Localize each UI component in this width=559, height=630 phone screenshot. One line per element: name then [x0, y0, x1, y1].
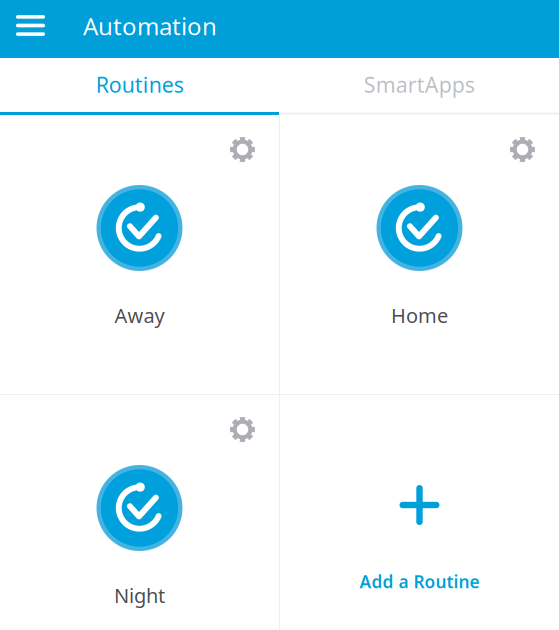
- staticText: Night: [114, 582, 165, 609]
- staticText: SmartApps: [364, 70, 475, 99]
- button[interactable]: Add a Routine: [280, 395, 559, 630]
- button[interactable]: Away: [0, 115, 279, 394]
- staticText: Automation: [83, 10, 217, 42]
- button[interactable]: Settings for Home: [496, 115, 559, 176]
- button[interactable]: Settings for Away: [216, 115, 279, 176]
- staticText: Routines: [96, 70, 184, 99]
- staticText: Home: [391, 302, 448, 329]
- button[interactable]: SmartApps: [279, 56, 559, 113]
- button[interactable]: Home: [280, 115, 559, 394]
- staticText: Add a Routine: [359, 570, 479, 593]
- button[interactable]: Night: [0, 395, 279, 630]
- staticText: Away: [114, 302, 164, 329]
- button[interactable]: Routines: [0, 56, 279, 113]
- button[interactable]: Settings for Night: [216, 395, 279, 456]
- button[interactable]: Menu: [0, 0, 57, 58]
